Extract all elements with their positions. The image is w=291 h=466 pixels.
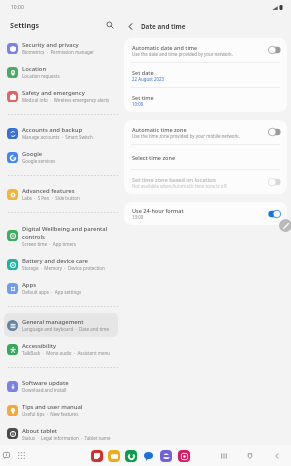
- button[interactable]: Digital Wellbeing and parental: [4, 219, 118, 252]
- button[interactable]: Set time: [124, 88, 287, 112]
- staticText: Advanced features: [22, 187, 75, 195]
- staticText: 22 August 2023: [132, 76, 164, 82]
- staticText: Select time zone: [132, 154, 176, 161]
- staticText: Medical info · Wireless emergency alerts: [22, 97, 110, 103]
- staticText: Google services: [22, 158, 56, 164]
- button[interactable]: About tablet: [4, 422, 118, 445]
- button[interactable]: [108, 450, 120, 462]
- button[interactable]: Advanced features: [4, 182, 118, 206]
- staticText: Accounts and backup: [22, 126, 83, 134]
- staticText: Set time: [132, 94, 154, 101]
- staticText: Biometrics · Permission manager: [22, 49, 95, 55]
- staticText: Security and privacy: [22, 41, 79, 49]
- button[interactable]: [178, 450, 190, 462]
- button[interactable]: Edit: [279, 219, 291, 232]
- button[interactable]: [91, 450, 103, 462]
- button[interactable]: [268, 178, 281, 186]
- button[interactable]: Accessibility: [4, 337, 118, 361]
- button[interactable]: [268, 128, 281, 136]
- staticText: Tips and user manual: [22, 403, 83, 411]
- staticText: Automatic time zone: [132, 126, 187, 133]
- staticText: Set time zone based on location: [132, 176, 216, 183]
- staticText: General management: [22, 318, 84, 326]
- staticText: Storage · Memory · Device protection: [22, 265, 105, 271]
- button[interactable]: [160, 450, 172, 462]
- staticText: Status · Legal information · Tablet name: [22, 435, 111, 441]
- button[interactable]: [268, 210, 281, 218]
- button[interactable]: Safety and emergency: [4, 84, 118, 108]
- staticText: Software update: [22, 379, 69, 387]
- button[interactable]: Location: [4, 60, 118, 84]
- button[interactable]: Search: [103, 18, 117, 32]
- staticText: About tablet: [22, 427, 58, 435]
- staticText: Automatic date and time: [132, 44, 198, 51]
- button[interactable]: Google: [4, 145, 118, 169]
- staticText: Not available when Automatic time zone i…: [132, 183, 228, 189]
- button[interactable]: Automatic time zone: [124, 120, 287, 144]
- button[interactable]: [125, 450, 137, 462]
- staticText: Battery and device care: [22, 257, 88, 265]
- button[interactable]: Recents: [219, 451, 228, 460]
- staticText: Location requests: [22, 73, 60, 79]
- staticText: Use 24-hour format: [132, 207, 184, 214]
- button[interactable]: Tips and user manual: [4, 398, 118, 422]
- staticText: Manage accounts · Smart Switch: [22, 134, 93, 140]
- button[interactable]: Security and privacy: [4, 36, 118, 60]
- button[interactable]: Apps: [4, 276, 118, 300]
- staticText: Accessibility: [22, 342, 57, 350]
- button[interactable]: Battery and device care: [4, 252, 118, 276]
- button[interactable]: Accounts and backup: [4, 121, 118, 145]
- staticText: Set date: [132, 69, 154, 76]
- button[interactable]: Assistant: [2, 451, 11, 460]
- staticText: Default apps · App settings: [22, 289, 82, 295]
- staticText: Location: [22, 65, 47, 73]
- button[interactable]: Automatic date and time: [124, 38, 287, 62]
- button[interactable]: [142, 450, 154, 462]
- button[interactable]: [268, 46, 281, 54]
- staticText: Download and install: [22, 387, 67, 393]
- button[interactable]: Use 24-hour format: [124, 202, 287, 225]
- staticText: Google: [22, 150, 43, 158]
- staticText: Language and keyboard · Date and time: [22, 326, 109, 332]
- button[interactable]: Select time zone: [124, 145, 287, 169]
- staticText: Safety and emergency: [22, 89, 85, 97]
- staticText: Use the time zone provided by your mobil…: [132, 133, 240, 139]
- staticText: 13:00: [132, 214, 144, 220]
- staticText: Digital Wellbeing and parental: [22, 225, 108, 233]
- staticText: Settings: [10, 20, 40, 30]
- staticText: Labs · S Pen · Side button: [22, 195, 80, 201]
- button[interactable]: Back: [123, 19, 137, 33]
- staticText: controls: [22, 233, 45, 241]
- button[interactable]: Home: [245, 451, 254, 460]
- button[interactable]: Apps: [17, 451, 26, 460]
- staticText: 10:00: [132, 101, 144, 107]
- staticText: Use the date and time provided by your n…: [132, 51, 233, 57]
- staticText: Useful tips · New features: [22, 411, 79, 417]
- button[interactable]: Set date: [124, 63, 287, 87]
- staticText: 10:00: [11, 4, 24, 11]
- button[interactable]: General management: [4, 313, 118, 337]
- staticText: Apps: [22, 281, 37, 289]
- button[interactable]: Back: [272, 451, 281, 460]
- staticText: Date and time: [141, 22, 186, 31]
- staticText: TalkBack · Mono audio · Assistant menu: [22, 350, 110, 356]
- staticText: Screen time · App timers: [22, 241, 76, 247]
- button[interactable]: Software update: [4, 374, 118, 398]
- button[interactable]: Set time zone based on location: [124, 170, 287, 194]
